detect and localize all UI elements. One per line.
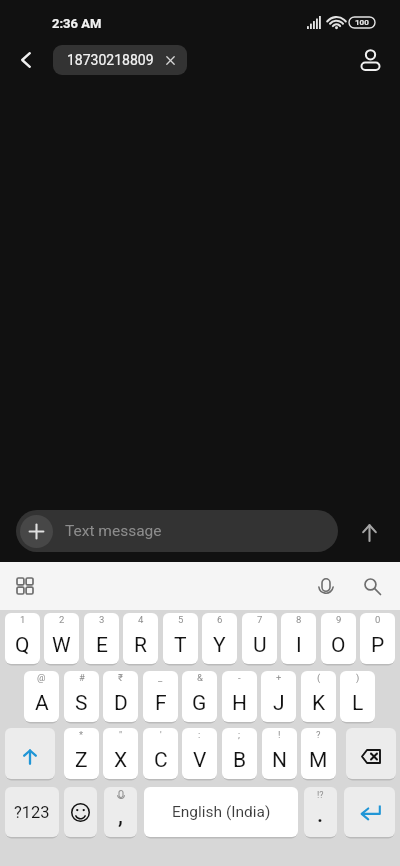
button[interactable]: 0 xyxy=(360,613,395,664)
staticText: D xyxy=(114,691,128,716)
staticText: S xyxy=(75,691,88,716)
staticText: ₹ xyxy=(118,672,123,683)
staticText: 18730218809 xyxy=(67,52,154,68)
staticText: 0 xyxy=(375,614,381,625)
staticText: ( xyxy=(317,672,321,683)
staticText: 4 xyxy=(138,614,144,625)
staticText: 2:36 AM xyxy=(52,16,102,31)
staticText: 8 xyxy=(296,614,302,625)
staticText: B xyxy=(233,748,247,773)
button[interactable]: _ xyxy=(143,671,178,722)
button[interactable]: # xyxy=(64,671,99,722)
staticText: V xyxy=(193,748,207,773)
staticText: P xyxy=(371,633,385,658)
staticText: Y xyxy=(213,633,226,658)
button[interactable]: Search xyxy=(355,569,389,603)
staticText: Text message xyxy=(65,522,162,540)
staticText: R xyxy=(134,633,147,658)
button[interactable]: Toolbox xyxy=(8,569,42,603)
staticText: Z xyxy=(75,748,88,773)
button[interactable]: ₹ xyxy=(103,671,138,722)
button[interactable]: 3 xyxy=(84,613,119,664)
staticText: I xyxy=(296,633,302,658)
button[interactable]: ? xyxy=(301,728,336,779)
staticText: A xyxy=(35,691,49,716)
staticText: H xyxy=(232,691,247,716)
staticText: 1 xyxy=(20,614,26,625)
button[interactable]: 7 xyxy=(242,613,277,664)
staticText: O xyxy=(331,633,346,658)
staticText: ! xyxy=(278,729,281,740)
staticText: 6 xyxy=(217,614,223,625)
button[interactable]: Send xyxy=(347,511,391,555)
staticText: !? xyxy=(317,790,324,801)
staticText: T xyxy=(174,633,187,658)
staticText: E xyxy=(96,633,108,658)
button[interactable]: 9 xyxy=(321,613,356,664)
staticText: 3 xyxy=(99,614,105,625)
button[interactable]: ; xyxy=(222,728,257,779)
button[interactable]: ( xyxy=(301,671,336,722)
button[interactable]: 5 xyxy=(163,613,198,664)
button[interactable]: Backspace xyxy=(346,728,396,779)
button[interactable]: Contact details xyxy=(350,40,390,80)
staticText: English (India) xyxy=(172,803,271,821)
button[interactable]: - xyxy=(222,671,257,722)
staticText: * xyxy=(79,729,84,740)
button[interactable]: 1 xyxy=(5,613,40,664)
staticText: N xyxy=(272,748,287,773)
staticText: J xyxy=(273,691,285,716)
staticText: M xyxy=(309,748,328,773)
button[interactable]: Emoji xyxy=(64,787,97,837)
staticText: ?123 xyxy=(14,803,50,822)
staticText: - xyxy=(238,672,241,683)
staticText: X xyxy=(114,748,128,773)
staticText: 2 xyxy=(59,614,65,625)
staticText: K xyxy=(312,691,326,716)
button[interactable]: 18730218809 xyxy=(53,45,187,75)
button[interactable]: Back xyxy=(6,40,46,80)
staticText: + xyxy=(276,672,282,683)
staticText: . xyxy=(317,802,324,828)
staticText: 9 xyxy=(336,614,342,625)
button[interactable]: @ xyxy=(24,671,59,722)
button[interactable]: Enter xyxy=(344,787,395,837)
staticText: # xyxy=(79,672,85,683)
button[interactable]: , xyxy=(104,787,137,837)
staticText: " xyxy=(119,729,123,740)
staticText: W xyxy=(52,633,71,658)
staticText: ' xyxy=(160,729,162,740)
button[interactable]: ' xyxy=(143,728,178,779)
button[interactable]: Shift xyxy=(5,728,55,779)
button[interactable]: & xyxy=(182,671,217,722)
button[interactable]: ! xyxy=(262,728,297,779)
button[interactable]: English (India) xyxy=(144,787,298,837)
button[interactable]: 6 xyxy=(202,613,237,664)
button[interactable]: Text message xyxy=(16,510,338,552)
button[interactable]: " xyxy=(103,728,138,779)
button[interactable]: 8 xyxy=(281,613,316,664)
staticText: , xyxy=(118,804,123,830)
button[interactable]: !? xyxy=(304,787,337,837)
staticText: @ xyxy=(37,672,46,683)
button[interactable]: ) xyxy=(340,671,375,722)
staticText: G xyxy=(192,691,207,716)
button[interactable]: 4 xyxy=(123,613,158,664)
button[interactable]: 2 xyxy=(44,613,79,664)
button[interactable]: Voice input xyxy=(309,569,343,603)
staticText: & xyxy=(197,672,203,683)
staticText: F xyxy=(155,691,167,716)
staticText: Q xyxy=(15,633,30,658)
staticText: L xyxy=(352,691,364,716)
staticText: U xyxy=(253,633,267,658)
staticText: _ xyxy=(158,672,163,683)
button[interactable]: ?123 xyxy=(5,787,59,837)
staticText: : xyxy=(198,729,201,740)
staticText: 7 xyxy=(257,614,263,625)
button[interactable]: : xyxy=(182,728,217,779)
staticText: 100 xyxy=(355,18,369,27)
button[interactable]: * xyxy=(64,728,99,779)
button[interactable]: + xyxy=(261,671,296,722)
staticText: ) xyxy=(356,672,360,683)
staticText: C xyxy=(154,748,168,773)
